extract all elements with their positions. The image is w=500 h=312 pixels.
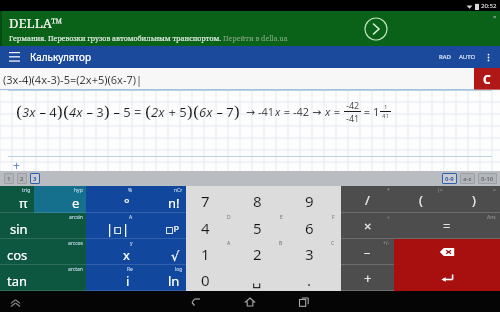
- button[interactable]: 7: [186, 186, 237, 213]
- button[interactable]: 3: [30, 173, 40, 184]
- button[interactable]: Add: [10, 157, 22, 169]
- button[interactable]: Re: [86, 265, 136, 291]
- button[interactable]: .: [289, 265, 341, 291]
- staticText: 3: [305, 244, 314, 264]
- button[interactable]: A: [186, 239, 237, 265]
- staticText: 2: [20, 175, 24, 183]
- button[interactable]: Menu: [6, 49, 22, 65]
- staticText: 7: [201, 191, 210, 211]
- button[interactable]: |<: [394, 186, 447, 213]
- button[interactable]: Enter: [394, 265, 500, 291]
- button[interactable]: arcsin: [34, 213, 86, 239]
- staticText: 4x: [69, 103, 83, 121]
- button[interactable]: ÷: [341, 213, 394, 239]
- staticText: +: [13, 157, 20, 169]
- button[interactable]: Ans: [394, 213, 500, 239]
- staticText: )(: [187, 100, 199, 123]
- button[interactable]: F: [289, 213, 341, 239]
- button[interactable]: Back: [187, 293, 205, 311]
- button[interactable]: 2: [17, 173, 27, 184]
- staticText: =: [331, 104, 344, 119]
- button[interactable]: a-z: [460, 173, 475, 184]
- staticText: -42: [346, 99, 360, 111]
- staticText: ): [234, 100, 240, 123]
- staticText: – 7: [213, 103, 234, 121]
- button[interactable]: Open advertisement: [364, 17, 388, 41]
- button[interactable]: 1: [4, 173, 14, 184]
- staticText: e: [72, 194, 80, 212]
- button[interactable]: Backspace: [394, 239, 500, 265]
- staticText: arctan: [68, 266, 83, 273]
- staticText: Перейти в della.ua: [223, 34, 288, 44]
- staticText: (3x-4)(4x-3)-5=(2x+5)(6x-7)|: [3, 72, 143, 87]
- staticText: 4: [201, 218, 210, 238]
- button[interactable]: nCr: [136, 186, 186, 213]
- staticText: B: [279, 240, 283, 247]
- button[interactable]: *: [341, 186, 394, 213]
- staticText: (: [16, 100, 22, 123]
- button[interactable]: C: [474, 68, 500, 90]
- button[interactable]: ␣: [237, 265, 289, 291]
- staticText: – 3: [83, 103, 104, 121]
- button[interactable]: 9: [289, 186, 341, 213]
- button[interactable]: %: [86, 186, 136, 213]
- staticText: √: [171, 249, 180, 264]
- staticText: 9: [305, 191, 314, 211]
- staticText: →: [240, 104, 258, 119]
- button[interactable]: 8: [237, 186, 289, 213]
- staticText: 5: [253, 218, 262, 238]
- staticText: %: [128, 187, 133, 194]
- staticText: tan: [7, 272, 28, 290]
- button[interactable]: 0-10: [478, 173, 497, 184]
- button[interactable]: 0-9: [442, 173, 457, 184]
- button[interactable]: sin: [0, 213, 34, 239]
- button[interactable]: arccos: [34, 239, 86, 265]
- staticText: 8: [253, 191, 262, 211]
- button[interactable]: Collapse: [8, 295, 22, 309]
- button[interactable]: trig: [0, 186, 34, 213]
- staticText: A: [227, 240, 231, 247]
- staticText: 41: [382, 112, 389, 120]
- button[interactable]: Recents: [295, 293, 313, 311]
- button[interactable]: +/-: [341, 239, 394, 265]
- button[interactable]: arctan: [34, 265, 86, 291]
- staticText: *: [387, 187, 390, 194]
- staticText: D: [227, 214, 231, 221]
- staticText: trig: [22, 187, 31, 194]
- staticText: )(: [57, 100, 69, 123]
- button[interactable]: 0: [186, 265, 237, 291]
- staticText: y: [130, 240, 133, 247]
- staticText: = 1: [361, 104, 380, 119]
- button[interactable]: hyp: [34, 186, 86, 213]
- button[interactable]: +: [341, 265, 394, 291]
- staticText: ln: [168, 272, 180, 290]
- button[interactable]: E: [237, 213, 289, 239]
- button[interactable]: tan: [0, 265, 34, 291]
- button[interactable]: AUTO: [455, 50, 480, 64]
- staticText: DELLA™: [9, 14, 62, 32]
- button[interactable]: RAD: [435, 50, 455, 64]
- staticText: 1: [384, 103, 388, 111]
- button[interactable]: log: [136, 265, 186, 291]
- staticText: – 4: [36, 103, 57, 121]
- button[interactable]: y: [86, 239, 136, 265]
- button[interactable]: More options: [480, 49, 496, 65]
- button[interactable]: C: [289, 239, 341, 265]
- button[interactable]: Home: [241, 293, 259, 311]
- staticText: (: [419, 191, 423, 209]
- staticText: hyp: [74, 187, 83, 194]
- staticText: x: [123, 246, 130, 264]
- button[interactable]: B: [237, 239, 289, 265]
- button[interactable]: D: [186, 213, 237, 239]
- staticText: ␣: [252, 271, 262, 288]
- button[interactable]: A: [86, 213, 136, 239]
- button[interactable]: cos: [0, 239, 34, 265]
- button[interactable]: ▫ᵖ: [136, 213, 186, 239]
- staticText: +: [364, 269, 372, 287]
- staticText: ): [104, 100, 110, 123]
- staticText: 1: [201, 244, 210, 264]
- staticText: i: [126, 272, 130, 290]
- button[interactable]: √: [136, 239, 186, 265]
- button[interactable]: >: [447, 186, 500, 213]
- staticText: 1: [7, 175, 11, 183]
